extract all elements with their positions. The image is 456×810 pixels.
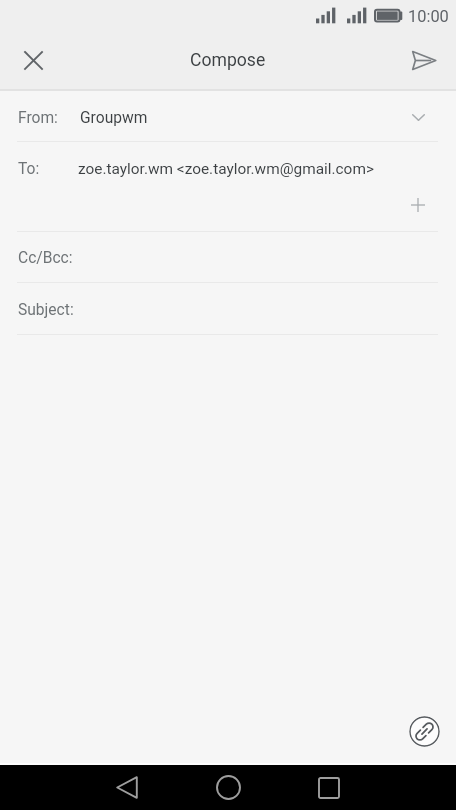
staticText: To: bbox=[18, 160, 40, 178]
button[interactable]: Cc/Bcc: bbox=[0, 232, 456, 282]
staticText: 10:00 bbox=[408, 7, 449, 26]
button[interactable]: Add recipient bbox=[400, 187, 436, 223]
staticText: Groupwm bbox=[80, 109, 148, 127]
button[interactable]: Close bbox=[9, 36, 57, 84]
staticText: Cc/Bcc: bbox=[18, 249, 73, 267]
button[interactable]: Change sender bbox=[400, 99, 436, 135]
staticText: zoe.taylor.wm <zoe.taylor.wm@gmail.com> bbox=[78, 160, 374, 178]
staticText: Subject: bbox=[18, 301, 74, 319]
button[interactable]: Send bbox=[400, 36, 448, 84]
button[interactable]: Subject: bbox=[0, 283, 456, 334]
button[interactable]: Recent apps bbox=[306, 765, 352, 810]
staticText: Compose bbox=[190, 50, 266, 71]
button[interactable]: Home bbox=[205, 765, 251, 810]
button[interactable]: From: bbox=[0, 91, 456, 141]
staticText: From: bbox=[18, 109, 58, 127]
button[interactable]: Attach file bbox=[409, 716, 440, 747]
button[interactable]: To: bbox=[0, 142, 456, 231]
button[interactable]: Back bbox=[104, 765, 150, 810]
